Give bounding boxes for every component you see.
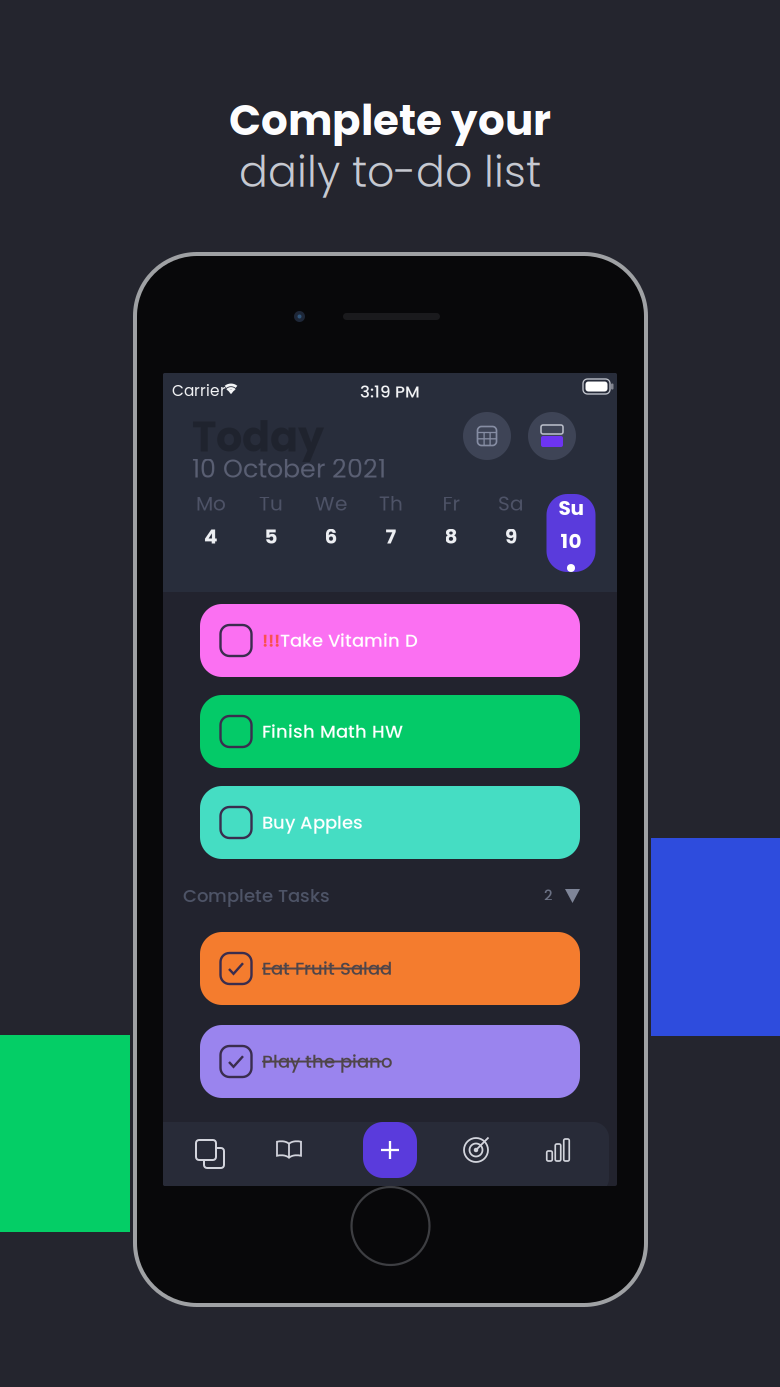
staticText: 10 October 2021 (192, 451, 386, 486)
button[interactable]: Buy Apples (200, 786, 580, 859)
staticText: We (315, 489, 347, 517)
button[interactable]: Tu (241, 494, 301, 572)
staticText: Buy Apples (262, 810, 363, 835)
staticText: Mo (196, 489, 226, 517)
staticText: 7 (385, 522, 396, 550)
staticText: Th (379, 489, 403, 517)
button[interactable]: Sa (481, 494, 541, 572)
button[interactable]: Mo (181, 494, 241, 572)
staticText: Complete Tasks (183, 883, 330, 908)
button[interactable]: We (301, 494, 361, 572)
button[interactable]: Su (541, 494, 601, 572)
staticText: 5 (264, 522, 277, 550)
staticText: Today (192, 408, 324, 466)
staticText: 4 (204, 522, 218, 550)
staticText: !!! (262, 628, 280, 653)
button[interactable]: Goals (441, 1122, 511, 1178)
staticText: daily to-do list (239, 142, 541, 202)
staticText: Tu (259, 489, 283, 517)
staticText: Take Vitamin D (280, 628, 418, 653)
staticText: Su (558, 494, 583, 522)
button[interactable]: Change layout (528, 412, 576, 460)
button[interactable]: Finish Math HW (200, 695, 580, 768)
staticText: Play the piano (262, 1049, 392, 1074)
button[interactable]: Fr (421, 494, 481, 572)
button[interactable]: Journal (254, 1122, 324, 1178)
staticText: 10 (560, 527, 581, 555)
staticText: 2 (544, 885, 552, 905)
staticText: Fr (442, 489, 459, 517)
button[interactable]: !!! (200, 604, 580, 677)
staticText: Finish Math HW (262, 719, 403, 744)
staticText: 9 (505, 522, 517, 550)
staticText: Complete your (229, 91, 551, 150)
staticText: Carrier (172, 380, 226, 401)
button[interactable]: Play the piano (200, 1025, 580, 1098)
button[interactable]: Th (361, 494, 421, 572)
staticText: Eat Fruit Salad (262, 956, 392, 981)
staticText: 3:19 PM (360, 380, 420, 403)
staticText: 6 (324, 522, 337, 550)
button[interactable]: Boards (171, 1122, 241, 1178)
button[interactable]: Statistics (523, 1122, 593, 1178)
staticText: Sa (498, 489, 524, 517)
button[interactable]: Eat Fruit Salad (200, 932, 580, 1005)
staticText: 8 (444, 522, 457, 550)
button[interactable]: Calendar (463, 412, 511, 460)
button[interactable]: Add task (363, 1122, 417, 1178)
